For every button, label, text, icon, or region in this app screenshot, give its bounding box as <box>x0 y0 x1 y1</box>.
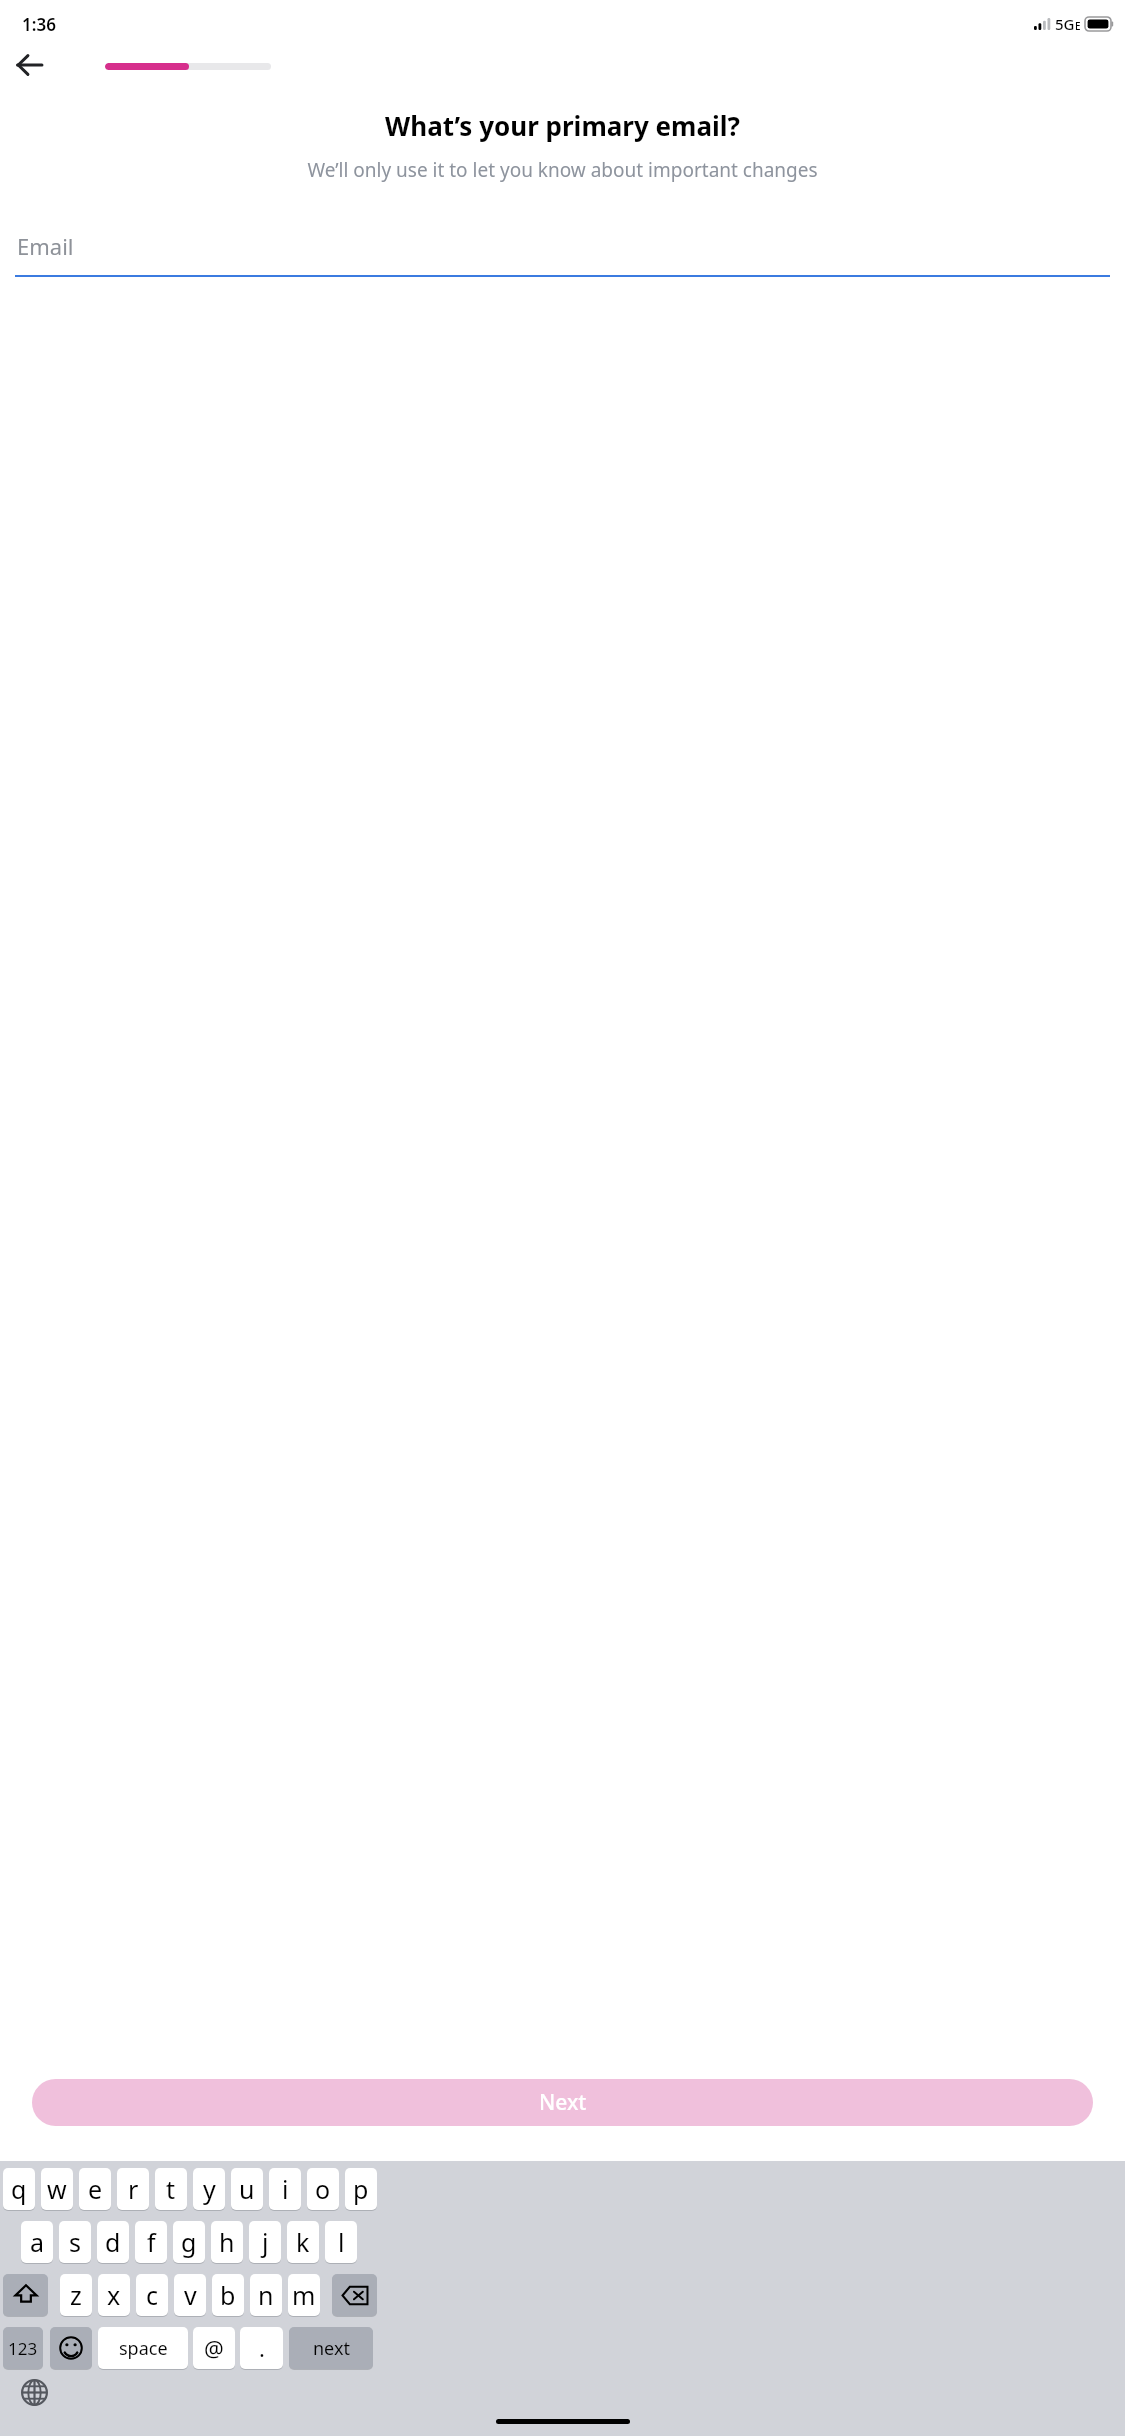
button[interactable]: n <box>250 2274 282 2316</box>
button[interactable]: c <box>136 2274 168 2316</box>
staticText: n <box>258 2278 274 2312</box>
staticText: m <box>292 2278 316 2312</box>
button[interactable]: Email <box>15 231 1110 277</box>
staticText: s <box>69 2225 81 2259</box>
staticText: g <box>181 2225 197 2259</box>
staticText: y <box>203 2172 216 2206</box>
staticText: w <box>47 2172 67 2206</box>
button[interactable]: x <box>98 2274 130 2316</box>
staticText: f <box>147 2225 156 2259</box>
button[interactable]: p <box>345 2168 377 2210</box>
staticText: c <box>146 2278 159 2312</box>
staticText: j <box>262 2225 269 2259</box>
button[interactable]: y <box>193 2168 225 2210</box>
staticText: next <box>313 2336 350 2361</box>
button[interactable]: space <box>98 2327 188 2369</box>
button[interactable]: d <box>97 2221 129 2263</box>
button[interactable]: l <box>325 2221 357 2263</box>
staticText: Next <box>539 2088 587 2117</box>
button[interactable]: Next <box>32 2079 1093 2126</box>
staticText: e <box>88 2172 103 2206</box>
staticText: We’ll only use it to let you know about … <box>42 157 1083 183</box>
button[interactable]: j <box>249 2221 281 2263</box>
staticText: b <box>220 2278 236 2312</box>
staticText: l <box>338 2225 345 2259</box>
staticText: . <box>259 2333 265 2363</box>
button[interactable]: Back <box>6 44 54 86</box>
staticText: p <box>353 2172 369 2206</box>
button[interactable]: i <box>269 2168 301 2210</box>
button[interactable]: q <box>3 2168 35 2210</box>
staticText: o <box>315 2172 331 2206</box>
button[interactable]: @ <box>193 2327 235 2369</box>
button[interactable]: g <box>173 2221 205 2263</box>
button[interactable]: 123 <box>3 2327 43 2369</box>
staticText: a <box>30 2225 45 2259</box>
button[interactable]: f <box>135 2221 167 2263</box>
staticText: space <box>119 2336 168 2361</box>
staticText: v <box>184 2278 197 2312</box>
button[interactable]: b <box>212 2274 244 2316</box>
staticText: z <box>70 2278 82 2312</box>
button[interactable]: s <box>59 2221 91 2263</box>
button[interactable]: next <box>289 2327 373 2369</box>
button[interactable]: r <box>117 2168 149 2210</box>
staticText: 1:36 <box>22 13 56 36</box>
button[interactable]: o <box>307 2168 339 2210</box>
staticText: r <box>128 2172 139 2206</box>
staticText: @ <box>204 2333 224 2363</box>
button[interactable]: k <box>287 2221 319 2263</box>
button[interactable]: a <box>21 2221 53 2263</box>
staticText: 123 <box>8 2337 38 2360</box>
button[interactable]: z <box>60 2274 92 2316</box>
staticText: Email <box>17 231 74 261</box>
button[interactable]: e <box>79 2168 111 2210</box>
staticText: u <box>239 2172 255 2206</box>
staticText: E <box>1075 19 1081 33</box>
staticText: d <box>105 2225 121 2259</box>
button[interactable]: Shift <box>3 2274 48 2316</box>
button[interactable]: Change keyboard <box>14 2372 54 2412</box>
button[interactable]: . <box>240 2327 283 2369</box>
staticText: i <box>282 2172 289 2206</box>
button[interactable]: h <box>211 2221 243 2263</box>
button[interactable]: Emoji <box>50 2327 92 2369</box>
button[interactable]: Backspace <box>332 2274 377 2316</box>
staticText: k <box>296 2225 310 2259</box>
button[interactable]: m <box>288 2274 320 2316</box>
button[interactable]: t <box>155 2168 187 2210</box>
staticText: x <box>107 2278 121 2312</box>
button[interactable]: u <box>231 2168 263 2210</box>
staticText: t <box>166 2172 176 2206</box>
staticText: What’s your primary email? <box>24 108 1101 143</box>
staticText: 5G <box>1055 14 1075 34</box>
button[interactable]: v <box>174 2274 206 2316</box>
button[interactable]: w <box>41 2168 73 2210</box>
staticText: q <box>11 2172 27 2206</box>
staticText: h <box>219 2225 235 2259</box>
